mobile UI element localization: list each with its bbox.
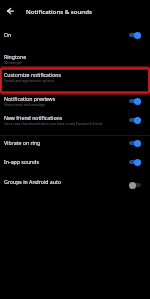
button[interactable]: Toggle on [129,30,141,40]
button[interactable]: Vibrate on ring [0,136,150,152]
staticText: Groups in Android auto [4,178,61,185]
staticText: Show name and message [4,102,46,107]
button[interactable]: New friend notifications [0,111,150,134]
button[interactable]: Groups in Android auto [0,172,150,192]
button[interactable]: Toggle off [129,180,141,190]
staticText: Sound and appearance options [4,78,55,83]
staticText: Messenger [4,60,22,65]
button[interactable]: In-app sounds [0,153,150,171]
staticText: Customize notifications [4,71,62,78]
button[interactable]: Toggle on [129,138,141,148]
staticText: Notification previews [4,95,56,102]
button[interactable]: Toggle on [129,115,141,125]
staticText: In-app sounds [4,158,39,165]
button[interactable]: On [0,24,150,45]
button[interactable]: Notification previews [0,93,150,110]
staticText: Ringtone [4,53,27,60]
button[interactable]: Toggle on [129,96,141,106]
staticText: On [4,31,12,38]
staticText: Notifications & sounds [26,7,92,15]
button[interactable]: Toggle on [129,157,141,167]
staticText: New friend notifications [4,114,63,121]
button[interactable]: Back [0,1,20,21]
button[interactable]: Ringtone [0,46,150,67]
button[interactable]: Customize notifications [0,68,150,92]
staticText: Get a new chat thread when you have a ne… [4,121,103,126]
staticText: Vibrate on ring [4,139,41,146]
